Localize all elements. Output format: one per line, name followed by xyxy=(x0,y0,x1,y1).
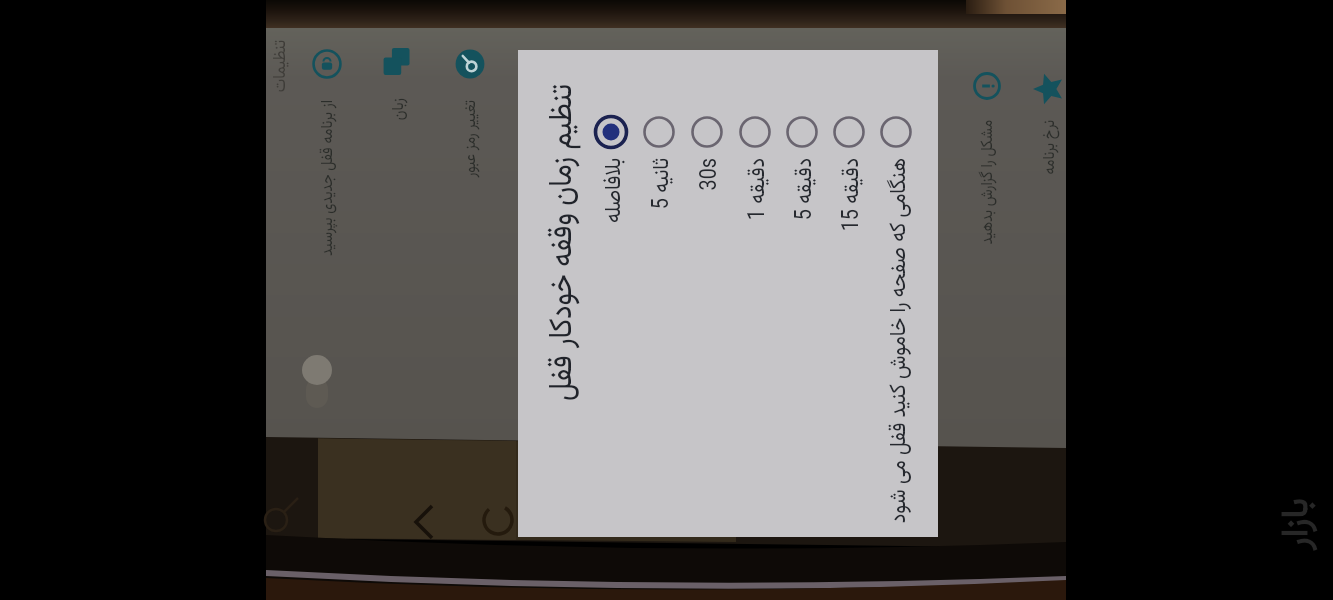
staticText: مشکل را گزارش بدهید xyxy=(975,120,1002,245)
button[interactable]: Ask for new lock xyxy=(311,48,343,80)
staticText: بازار xyxy=(1269,498,1327,550)
staticText: 5 ثانیه xyxy=(644,158,680,210)
button[interactable]: Report a problem xyxy=(971,70,1003,102)
other: Report a problem xyxy=(971,70,1003,102)
staticText: 1 دقیقه xyxy=(740,158,776,221)
staticText: هنگامی که صفحه را خاموش کنید قفل می شود xyxy=(881,158,917,523)
other: Toggle xyxy=(302,352,332,410)
other: Change password xyxy=(454,48,486,80)
staticText: 15 دقیقه xyxy=(834,158,870,232)
other: Language xyxy=(382,46,414,78)
button[interactable] xyxy=(829,112,869,152)
staticText: 5 دقیقه xyxy=(787,158,823,221)
button[interactable] xyxy=(518,50,938,537)
staticText: تنظیم زمان وقفه خودکار قفل xyxy=(538,84,588,402)
button[interactable] xyxy=(782,112,822,152)
staticText: تنظیمات xyxy=(267,40,295,93)
button[interactable] xyxy=(639,112,679,152)
staticText: 30s xyxy=(692,158,728,191)
staticText: نرخ برنامه xyxy=(1037,120,1064,175)
other: Rate app xyxy=(1033,73,1065,105)
button[interactable] xyxy=(591,112,631,152)
button[interactable] xyxy=(876,112,916,152)
staticText: زبان xyxy=(386,98,413,121)
button[interactable]: Language xyxy=(382,46,414,78)
button[interactable]: Rate app xyxy=(1033,73,1065,105)
button[interactable]: Change password xyxy=(454,48,486,80)
other: Ask for new lock xyxy=(311,48,343,80)
staticText: از برنامه قفل جدیدی بپرسید xyxy=(315,100,342,256)
staticText: تغییر رمز عبور xyxy=(458,100,485,178)
staticText: بلافاصله xyxy=(596,158,632,223)
button[interactable] xyxy=(735,112,775,152)
button[interactable] xyxy=(687,112,727,152)
